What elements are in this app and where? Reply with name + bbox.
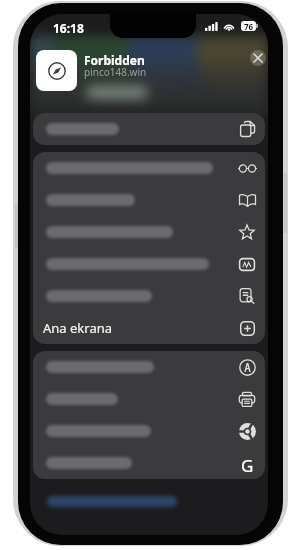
button[interactable] (33, 351, 265, 383)
staticText: 76 (244, 21, 254, 31)
staticText: Ana ekrana (43, 319, 113, 337)
button[interactable] (33, 415, 265, 447)
button[interactable]: G (33, 447, 265, 479)
staticText: G (241, 454, 254, 472)
button[interactable]: Edit Actions (43, 492, 181, 510)
staticText: 16:18 (53, 20, 84, 36)
button[interactable] (33, 113, 265, 145)
staticText: Forbidden (84, 52, 145, 68)
button[interactable] (33, 152, 265, 184)
button[interactable] (33, 184, 265, 216)
staticText: pinco148.win (84, 65, 147, 79)
button[interactable]: Ana ekrana (33, 312, 265, 344)
button[interactable] (33, 216, 265, 248)
button[interactable] (33, 280, 265, 312)
button[interactable] (33, 248, 265, 280)
button[interactable] (33, 383, 265, 415)
button[interactable]: Close (250, 50, 266, 66)
